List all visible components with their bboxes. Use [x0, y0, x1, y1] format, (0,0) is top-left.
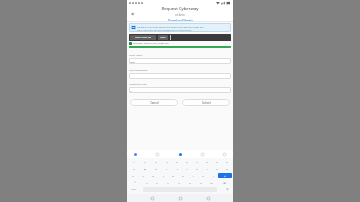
- staticText: u: [196, 167, 198, 170]
- staticText: Select sheet file: [135, 36, 151, 39]
- staticText: 9: [216, 160, 218, 163]
- staticText: p: [226, 167, 228, 170]
- staticText: n: [200, 181, 202, 184]
- button[interactable]: q: [128, 166, 139, 171]
- button[interactable]: Enter: [218, 173, 232, 178]
- button[interactable]: Submit: [182, 99, 230, 106]
- button[interactable]: John: [129, 58, 231, 64]
- button[interactable]: 5: [172, 159, 182, 164]
- staticText: Download Sheets: [168, 19, 193, 21]
- button[interactable]: j: [188, 173, 198, 178]
- staticText: 0: [226, 160, 228, 163]
- button[interactable]: k: [198, 173, 208, 178]
- staticText: Only .xlsx and .csv are supported for su…: [137, 28, 192, 31]
- staticText: f: [163, 174, 164, 177]
- staticText: 4: [166, 160, 168, 163]
- button[interactable]: 6: [182, 159, 192, 164]
- button[interactable]: 0: [222, 159, 232, 164]
- button[interactable]: f: [158, 173, 168, 178]
- staticText: g: [172, 174, 174, 177]
- button[interactable]: 3: [150, 159, 161, 164]
- button[interactable]: i: [202, 166, 212, 171]
- button[interactable]: Sticker: [200, 152, 205, 157]
- staticText: v: [178, 181, 180, 184]
- button[interactable]: Back: [129, 10, 137, 18]
- staticText: y: [186, 167, 188, 170]
- button[interactable]: a: [128, 173, 138, 178]
- button[interactable]: Recents: [205, 195, 211, 201]
- button[interactable]: N: [129, 87, 231, 93]
- button[interactable]: 7: [192, 159, 202, 164]
- button[interactable]: e: [150, 166, 161, 171]
- button[interactable]: 1: [128, 159, 139, 164]
- button[interactable]: Select sheet file: [130, 34, 230, 41]
- button[interactable]: z: [142, 180, 152, 185]
- button[interactable]: Cancel: [130, 99, 178, 106]
- staticText: 1: [133, 160, 135, 163]
- button[interactable]: b: [184, 180, 195, 185]
- button[interactable]: r: [161, 166, 172, 171]
- staticText: t: [177, 167, 178, 170]
- button[interactable]: d: [148, 173, 158, 178]
- staticText: l: [213, 174, 214, 177]
- button[interactable]: Clipboard: [133, 152, 138, 157]
- button[interactable]: 9: [212, 159, 222, 164]
- staticText: 5: [176, 160, 178, 163]
- button[interactable]: m: [206, 180, 217, 185]
- staticText: z: [146, 181, 148, 184]
- staticText: Work Description: [129, 69, 148, 72]
- staticText: ⇧: [134, 181, 136, 184]
- staticText: 8: [206, 160, 208, 163]
- button[interactable]: y: [182, 166, 192, 171]
- button[interactable]: Please fill the form below and attach th…: [131, 23, 229, 32]
- staticText: 2: [144, 160, 146, 163]
- staticText: Additional Notes: [129, 83, 147, 86]
- staticText: d: [152, 174, 154, 177]
- button[interactable]: Emoji: [222, 187, 232, 192]
- staticText: ,: [140, 188, 141, 191]
- button[interactable]: p: [222, 166, 232, 171]
- staticText: Submit: [202, 101, 211, 105]
- button[interactable]: 4: [161, 159, 172, 164]
- staticText: Please fill the form below and attach th…: [137, 25, 204, 28]
- button[interactable]: Back: [149, 195, 155, 201]
- button[interactable]: o: [212, 166, 222, 171]
- staticText: N: [130, 89, 132, 92]
- staticText: 6: [186, 160, 188, 163]
- button[interactable]: g: [168, 173, 178, 178]
- staticText: cyberway_request_2024_sheet.xlsx: [133, 42, 169, 45]
- button[interactable]: n: [195, 180, 206, 185]
- button[interactable]: Search: [178, 152, 183, 157]
- button[interactable]: Shift: [128, 180, 142, 185]
- staticText: o: [216, 167, 218, 170]
- staticText: i: [207, 167, 208, 170]
- button[interactable]: [129, 73, 231, 79]
- staticText: .: [219, 188, 220, 191]
- button[interactable]: GIF: [155, 152, 160, 157]
- button[interactable]: 8: [202, 159, 212, 164]
- button[interactable]: Home: [177, 195, 183, 201]
- button[interactable]: Settings: [222, 152, 227, 157]
- staticText: ⌫: [223, 182, 226, 184]
- button[interactable]: h: [178, 173, 188, 178]
- staticText: ?123: [131, 188, 136, 191]
- button[interactable]: v: [173, 180, 184, 185]
- button[interactable]: 2: [139, 159, 150, 164]
- staticText: q: [133, 167, 135, 170]
- button[interactable]: u: [192, 166, 202, 171]
- button[interactable]: w: [139, 166, 150, 171]
- staticText: b: [189, 181, 191, 184]
- button[interactable]: x: [152, 180, 162, 185]
- button[interactable]: Backspace: [217, 180, 232, 185]
- button[interactable]: c: [162, 180, 173, 185]
- staticText: a: [132, 174, 134, 177]
- button[interactable]: l: [208, 173, 218, 178]
- button[interactable]: ?123: [128, 187, 138, 192]
- staticText: Clear: [160, 36, 166, 39]
- button[interactable]: t: [172, 166, 182, 171]
- staticText: r: [166, 167, 167, 170]
- button[interactable]: s: [138, 173, 148, 178]
